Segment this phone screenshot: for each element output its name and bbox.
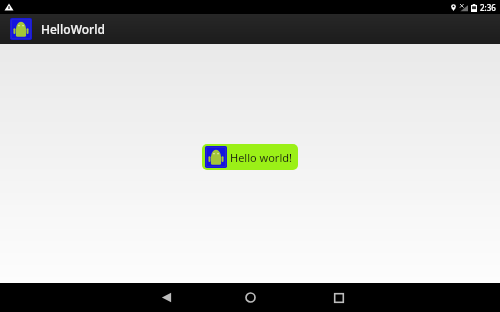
staticText: 2:36 (480, 2, 496, 13)
button[interactable]: Hello world! (202, 144, 298, 170)
button[interactable]: Home (230, 283, 270, 312)
staticText: HelloWorld (41, 21, 105, 37)
button[interactable]: Recent apps (319, 283, 359, 312)
staticText: Hello world! (230, 150, 292, 165)
button[interactable]: Back (146, 283, 186, 312)
